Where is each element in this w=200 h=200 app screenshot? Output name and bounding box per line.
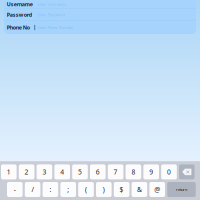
staticText: return — [176, 187, 187, 192]
button[interactable]: Password — [4, 9, 196, 21]
button[interactable]: 3 — [37, 164, 52, 179]
staticText: 9 — [149, 167, 153, 176]
button[interactable]: Delete — [179, 164, 195, 179]
staticText: 8 — [131, 167, 135, 176]
button[interactable]: ( — [78, 182, 94, 197]
staticText: 7 — [114, 167, 118, 176]
button[interactable]: return — [167, 182, 196, 197]
button[interactable]: / — [25, 182, 40, 197]
staticText: 1 — [7, 167, 11, 176]
button[interactable]: 6 — [90, 164, 106, 179]
button[interactable]: 5 — [72, 164, 88, 179]
staticText: 4 — [60, 167, 64, 176]
button[interactable]: $ — [114, 182, 129, 197]
staticText: - — [14, 185, 16, 194]
button[interactable]: 7 — [108, 164, 123, 179]
staticText: 6 — [96, 167, 100, 176]
button[interactable]: 2 — [19, 164, 34, 179]
staticText: 5 — [78, 167, 82, 176]
button[interactable]: @ — [149, 182, 165, 197]
button[interactable]: ) — [96, 182, 112, 197]
staticText: Phone No — [7, 24, 30, 31]
staticText: 0 — [167, 167, 171, 176]
staticText: & — [137, 185, 142, 194]
staticText: @ — [154, 185, 160, 194]
staticText: Enter Phone Number — [37, 25, 73, 30]
button[interactable]: 1 — [1, 164, 17, 179]
staticText: Enter Password — [37, 12, 64, 17]
staticText: ; — [67, 185, 69, 194]
button[interactable]: 9 — [143, 164, 159, 179]
staticText: Username — [7, 1, 33, 8]
staticText: Enter Username — [37, 2, 66, 7]
staticText: 2 — [25, 167, 29, 176]
button[interactable]: & — [132, 182, 147, 197]
button[interactable]: ; — [60, 182, 76, 197]
staticText: Password — [7, 11, 32, 18]
button[interactable]: 8 — [126, 164, 141, 179]
button[interactable]: - — [7, 182, 23, 197]
button[interactable]: Username — [4, 0, 196, 9]
button[interactable]: Phone No — [4, 21, 196, 34]
staticText: / — [32, 185, 34, 194]
button[interactable]: : — [43, 182, 58, 197]
staticText: 3 — [42, 167, 46, 176]
button[interactable]: 4 — [54, 164, 70, 179]
staticText: ( — [85, 185, 87, 194]
staticText: ) — [103, 185, 105, 194]
button[interactable]: 0 — [161, 164, 177, 179]
staticText: : — [49, 185, 51, 194]
staticText: $ — [120, 185, 124, 194]
